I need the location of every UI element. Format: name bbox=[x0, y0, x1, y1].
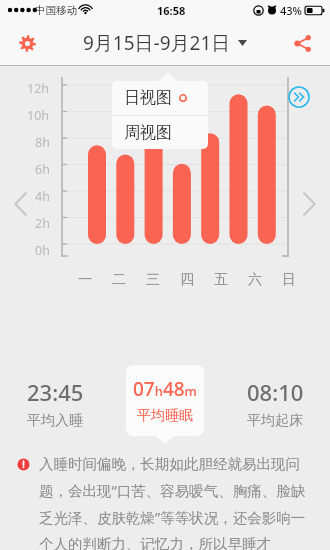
staticText: 0h bbox=[35, 242, 50, 259]
staticText: 10h bbox=[27, 107, 50, 124]
staticText: 07h48m bbox=[133, 376, 197, 402]
staticText: 8h bbox=[35, 134, 50, 151]
staticText: 6h bbox=[35, 161, 50, 178]
staticText: 12h bbox=[27, 80, 50, 97]
button[interactable]: Next week bbox=[293, 188, 325, 220]
staticText: 入睡时间偏晚，长期如此胆经就易出现问题，会出现“口苦、容易嗳气、胸痛、脸缺乏光泽… bbox=[39, 455, 316, 550]
staticText: 4h bbox=[35, 188, 50, 205]
staticText: 23:45 bbox=[27, 377, 84, 407]
staticText: 平均起床 bbox=[247, 412, 303, 430]
button[interactable]: 日视图 bbox=[112, 81, 208, 115]
staticText: 08:10 bbox=[247, 377, 304, 407]
staticText: 日视图 bbox=[124, 88, 172, 108]
staticText: 9月15日-9月21日 bbox=[83, 30, 231, 56]
staticText: 平均入睡 bbox=[27, 412, 83, 430]
staticText: 平均睡眠 bbox=[137, 407, 193, 425]
staticText: 五 bbox=[214, 271, 228, 289]
button[interactable]: 07h48m bbox=[126, 365, 204, 436]
button[interactable]: Next bbox=[288, 86, 310, 108]
button[interactable]: 周视图 bbox=[112, 116, 208, 149]
staticText: 43% bbox=[280, 3, 302, 18]
button[interactable]: 23:45 bbox=[0, 377, 110, 430]
button[interactable]: Share bbox=[288, 28, 318, 58]
staticText: 日 bbox=[282, 271, 296, 289]
button[interactable]: Settings bbox=[12, 28, 42, 58]
staticText: 六 bbox=[248, 271, 262, 289]
staticText: 中国移动 bbox=[35, 4, 77, 17]
staticText: 周视图 bbox=[124, 123, 172, 143]
staticText: 二 bbox=[112, 271, 126, 289]
staticText: 16:58 bbox=[157, 3, 186, 18]
button[interactable]: Previous week bbox=[5, 188, 37, 220]
staticText: 四 bbox=[180, 271, 194, 289]
staticText: 一 bbox=[78, 271, 92, 289]
button[interactable]: 08:10 bbox=[220, 377, 330, 430]
staticText: 2h bbox=[35, 215, 50, 232]
button[interactable]: 9月15日-9月21日 bbox=[83, 30, 247, 56]
staticText: 三 bbox=[146, 271, 160, 289]
